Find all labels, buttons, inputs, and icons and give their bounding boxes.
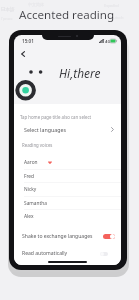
button[interactable]: Aaron [14,155,121,169]
staticText: Nicky [24,186,37,193]
staticText: Aaron [24,159,38,166]
staticText: 15:01 [22,38,34,44]
staticText: Hi,there [59,65,101,81]
button[interactable]: Back [17,48,29,60]
staticText: Tap home page title also can select [20,114,92,120]
staticText: Samantha [24,200,47,207]
button[interactable]: Shake to exchange languages [14,230,121,243]
button[interactable]: Samantha [14,196,121,210]
button[interactable]: Alex [14,209,121,223]
staticText: Read automatically [22,250,68,257]
button[interactable]: Nicky [14,182,121,196]
staticText: Select languages [24,126,66,133]
staticText: Shake to exchange languages [22,233,93,240]
button[interactable]: Read automatically [14,247,121,260]
staticText: Alex [24,213,34,220]
staticText: Гречес [1,16,13,21]
button[interactable]: Fred [14,169,121,183]
staticText: Reading voices [22,142,53,148]
staticText: Deutsch [108,15,124,20]
staticText: Accented reading [19,7,115,23]
staticText: 日本語 [1,7,15,13]
staticText: Fred [24,173,35,180]
staticText: Español [104,3,119,8]
staticText: 4G [105,39,111,45]
button[interactable]: Select languages [14,123,121,136]
